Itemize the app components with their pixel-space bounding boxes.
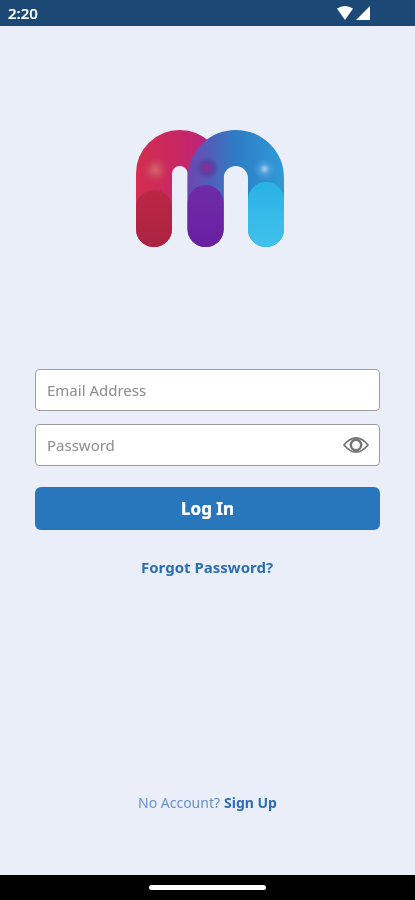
button[interactable]: Password	[35, 424, 380, 466]
staticText: Forgot Password?	[141, 557, 274, 577]
staticText: Log In	[181, 497, 234, 520]
button[interactable]	[344, 433, 368, 457]
staticText: Password	[47, 435, 115, 455]
staticText: 2:20	[8, 3, 38, 23]
staticText: Email Address	[47, 380, 147, 400]
button[interactable]: Log In	[35, 487, 380, 530]
staticText: No Account?	[138, 793, 224, 812]
button[interactable]: Forgot Password?	[141, 557, 274, 577]
button[interactable]: Email Address	[35, 369, 380, 411]
button[interactable]: Sign Up	[224, 793, 277, 812]
staticText: Sign Up	[224, 793, 277, 812]
